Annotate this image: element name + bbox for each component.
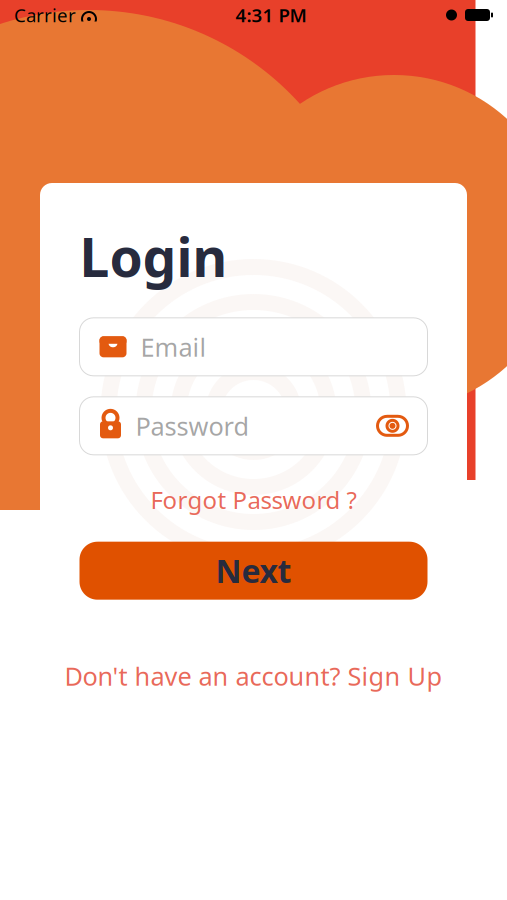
staticText: Login bbox=[79, 221, 227, 292]
button[interactable]: Forgot Password ? bbox=[140, 479, 366, 521]
staticText: Carrier bbox=[14, 3, 76, 27]
button[interactable]: Show password bbox=[377, 416, 407, 436]
button[interactable]: Next bbox=[79, 542, 427, 600]
staticText: Forgot Password ? bbox=[150, 484, 356, 516]
staticText: Email bbox=[140, 330, 206, 364]
button[interactable]: Don't have an account? Sign Up bbox=[54, 654, 452, 698]
staticText: 4:31 PM bbox=[235, 3, 306, 27]
staticText: Don't have an account? Sign Up bbox=[64, 659, 442, 693]
staticText: Password bbox=[135, 409, 249, 443]
staticText: Next bbox=[215, 549, 291, 592]
